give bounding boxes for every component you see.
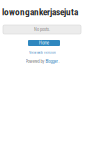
staticText: Powered by (25, 59, 44, 64)
staticText: Blogger (45, 59, 57, 64)
staticText: View web version (29, 50, 56, 55)
button[interactable]: Home (28, 40, 60, 46)
button[interactable]: View web version (0, 50, 85, 55)
staticText: . (58, 59, 59, 64)
staticText: Home (39, 40, 49, 46)
staticText: lowongankerjasejuta (2, 6, 78, 17)
button[interactable]: Blogger (45, 59, 57, 64)
staticText: No posts. (34, 27, 50, 32)
